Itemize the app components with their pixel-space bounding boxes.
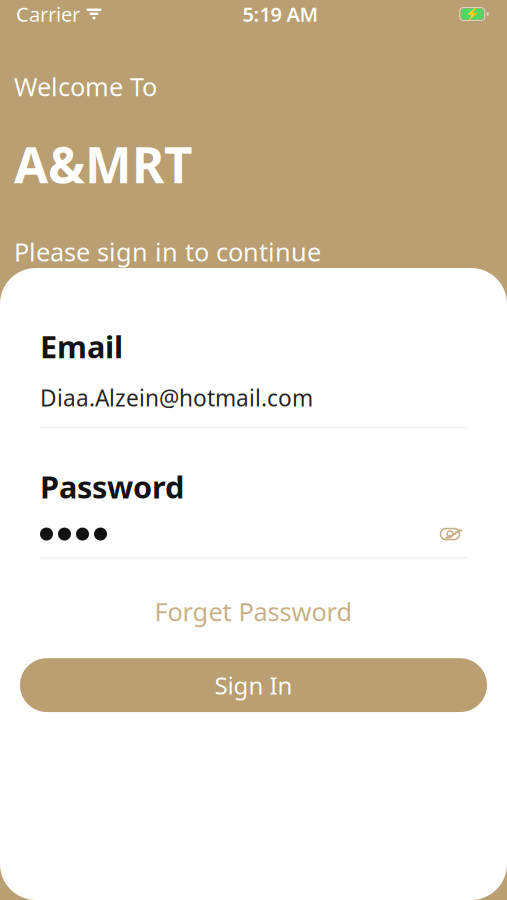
staticText: Sign In <box>214 669 292 701</box>
staticText: Diaa.Alzein@hotmail.com <box>40 383 313 413</box>
staticText: 5:19 AM <box>242 1 318 27</box>
staticText: Please sign in to continue <box>14 235 321 268</box>
staticText: ⚡ <box>465 7 480 21</box>
staticText: Password <box>40 466 184 507</box>
staticText: A&MRT <box>14 131 192 197</box>
button[interactable]: Forget Password <box>40 587 467 636</box>
button[interactable]: Sign In <box>20 658 487 712</box>
button[interactable]: Show password <box>433 519 467 549</box>
staticText: Forget Password <box>154 595 352 628</box>
staticText: Welcome To <box>14 70 157 103</box>
staticText: Email <box>40 326 123 367</box>
staticText: Carrier <box>16 1 80 27</box>
